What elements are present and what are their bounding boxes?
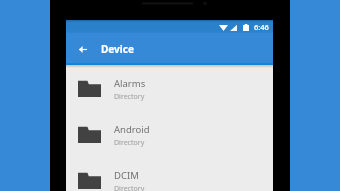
staticText: DCIM xyxy=(114,169,139,182)
staticText: Directory xyxy=(114,184,145,191)
button[interactable]: Alarms xyxy=(66,65,273,111)
button[interactable]: Navigate up xyxy=(70,36,96,62)
staticText: Alarms xyxy=(114,77,146,90)
staticText: Directory xyxy=(114,92,145,102)
button[interactable]: Android xyxy=(66,111,273,157)
button[interactable]: DCIM xyxy=(66,157,273,191)
staticText: Device xyxy=(101,42,134,56)
staticText: 6:46 xyxy=(254,22,269,32)
staticText: Directory xyxy=(114,138,145,148)
staticText: Android xyxy=(114,123,150,136)
